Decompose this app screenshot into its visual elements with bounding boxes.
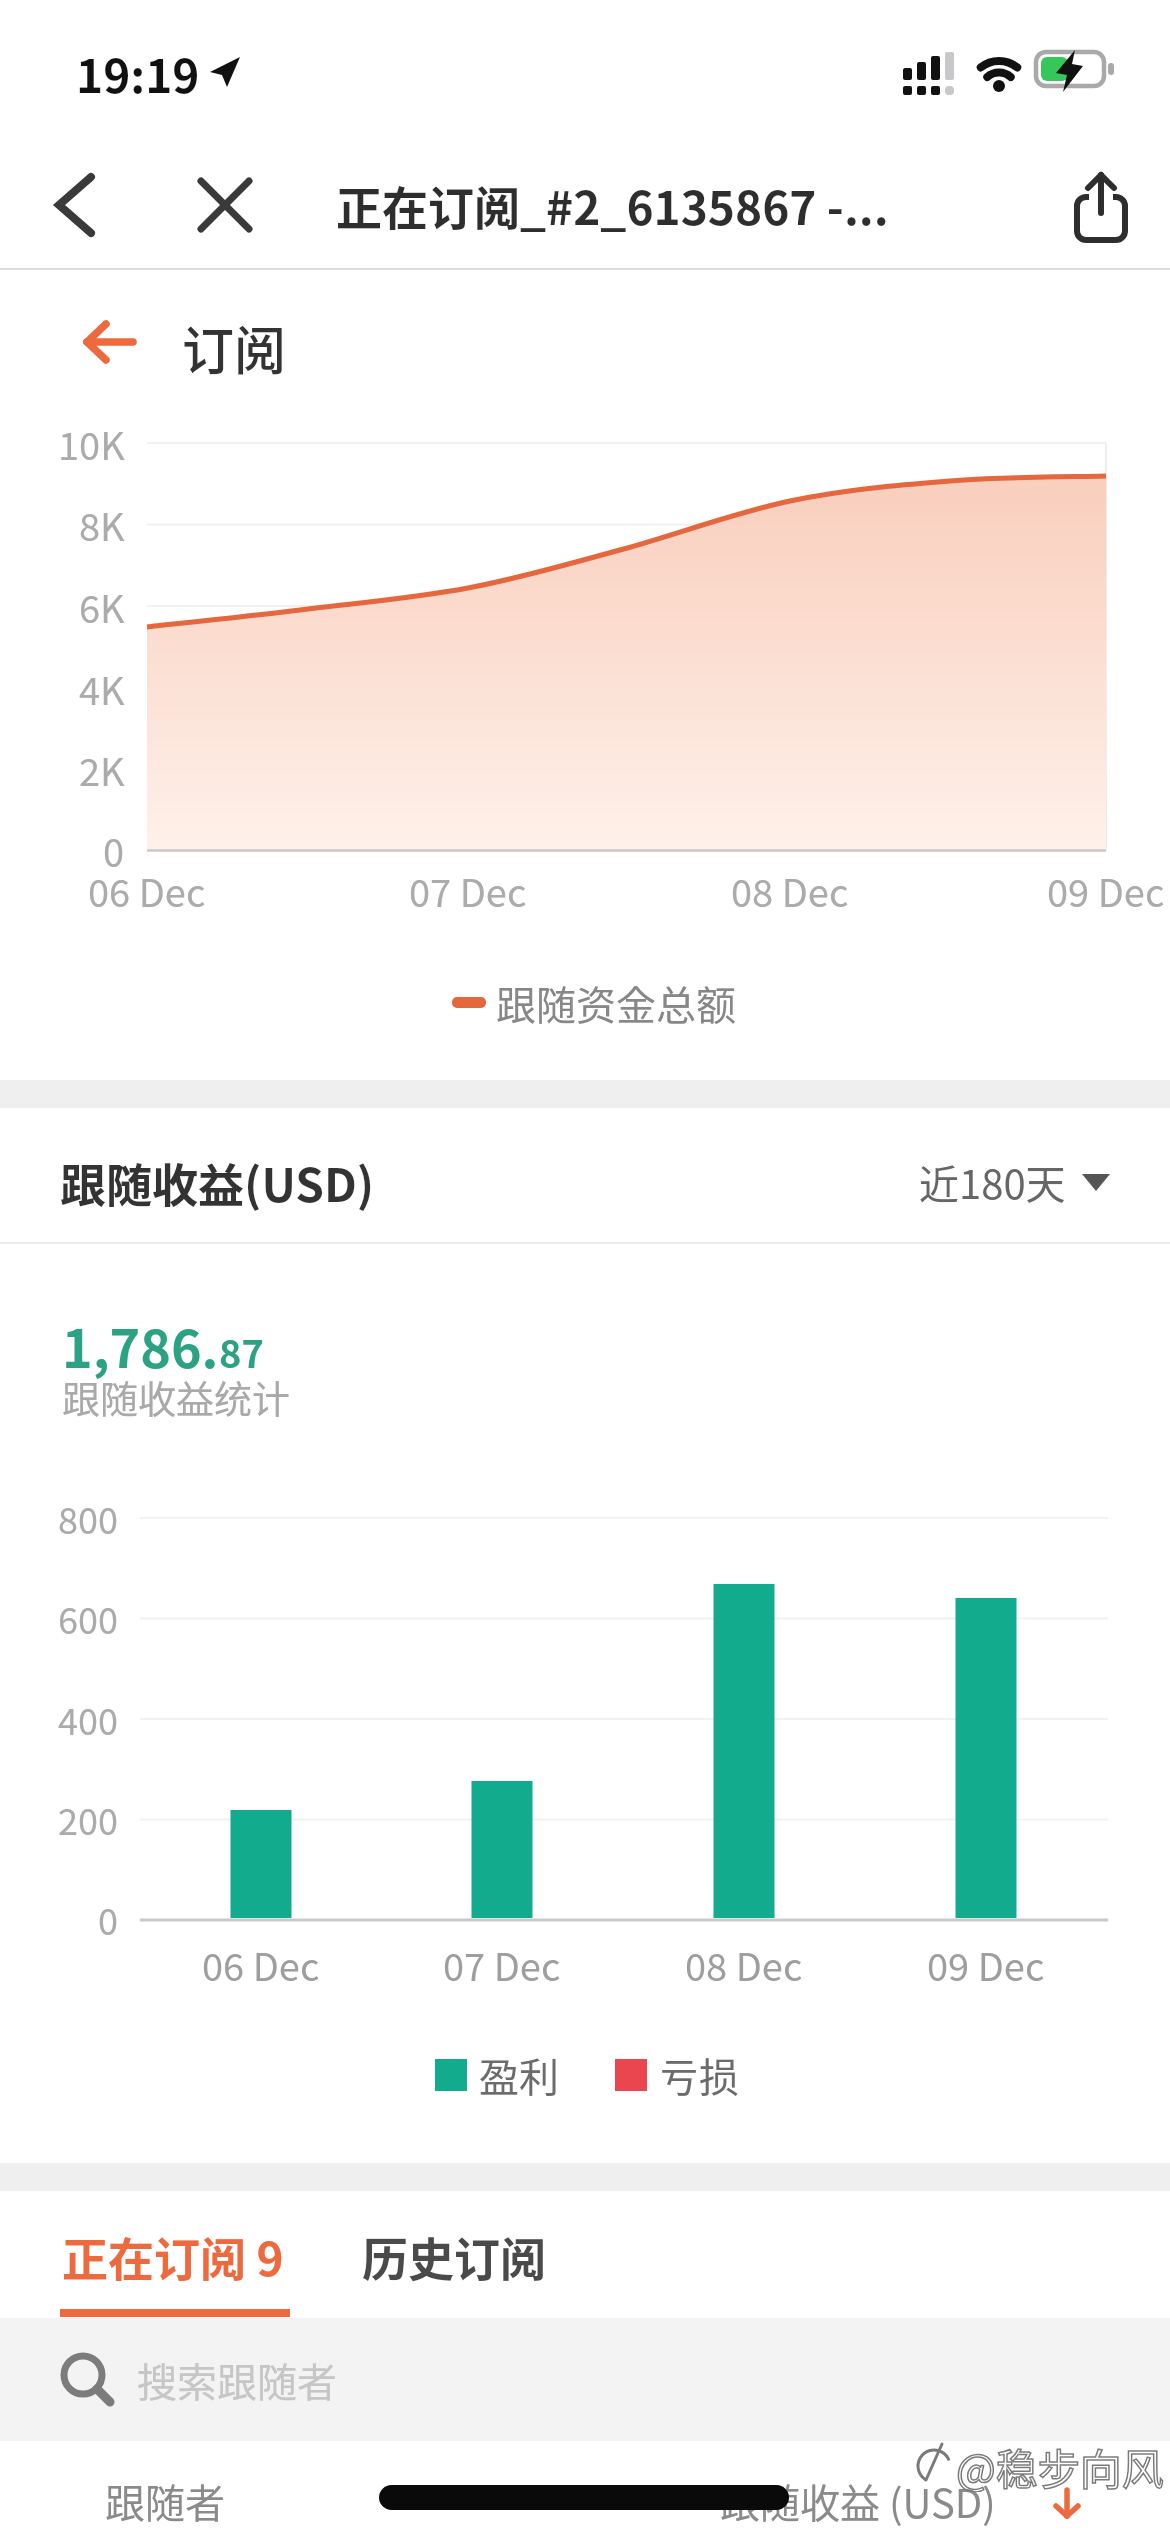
staticText: 跟随收益统计 [62,1369,291,1424]
staticText: 06 Dec [88,863,206,918]
staticText: 盈利 [479,2046,559,2104]
staticText: 跟随收益(USD) [60,1149,375,1216]
staticText: 跟随收益 (USD) [720,2472,996,2530]
staticText: 09 Dec [927,1937,1045,1992]
staticText: 07 Dec [443,1937,561,1992]
staticText: 6K [79,579,125,634]
staticText: 订阅 [182,310,287,378]
staticText: 08 Dec [731,863,849,918]
staticText: 0 [103,823,125,878]
staticText: 1,786. [62,1308,219,1383]
staticText: @稳步向风 [956,2436,1164,2492]
staticText: 正在订阅 9 [62,2223,284,2290]
staticText: 4K [79,661,125,716]
staticText: 600 [58,1592,118,1644]
button[interactable]: 正在订阅 9 [62,2222,362,2290]
button[interactable]: 近180天 [800,1148,1066,1216]
staticText: 亏损 [659,2046,739,2104]
staticText: 200 [58,1793,118,1845]
staticText: 0 [98,1893,118,1945]
staticText: 2K [79,742,125,797]
staticText: 800 [58,1492,118,1544]
staticText: 06 Dec [202,1937,320,1992]
staticText: 87 [219,1324,264,1379]
button[interactable] [1056,160,1146,255]
staticText: 正在订阅_#2_6135867 -... [336,172,889,239]
button[interactable] [60,310,160,374]
staticText: 8K [79,497,125,552]
staticText: 08 Dec [685,1937,803,1992]
button[interactable] [185,165,265,245]
button[interactable]: 跟随收益 (USD) [600,2467,996,2532]
staticText: 07 Dec [409,863,527,918]
button[interactable]: 历史订阅 [362,2222,622,2290]
staticText: 400 [58,1693,118,1745]
staticText: 历史订阅 [362,2223,546,2290]
staticText: 10K [58,416,125,471]
staticText: 跟随者 [105,2472,225,2530]
button[interactable]: 搜索跟随者 [0,2318,1170,2441]
button[interactable] [30,160,120,250]
staticText: 近180天 [919,1153,1066,1211]
staticText: 搜索跟随者 [137,2351,337,2409]
staticText: 19:19 [76,40,200,107]
staticText: 跟随资金总额 [496,974,736,1032]
staticText: 09 Dec [1047,863,1165,918]
